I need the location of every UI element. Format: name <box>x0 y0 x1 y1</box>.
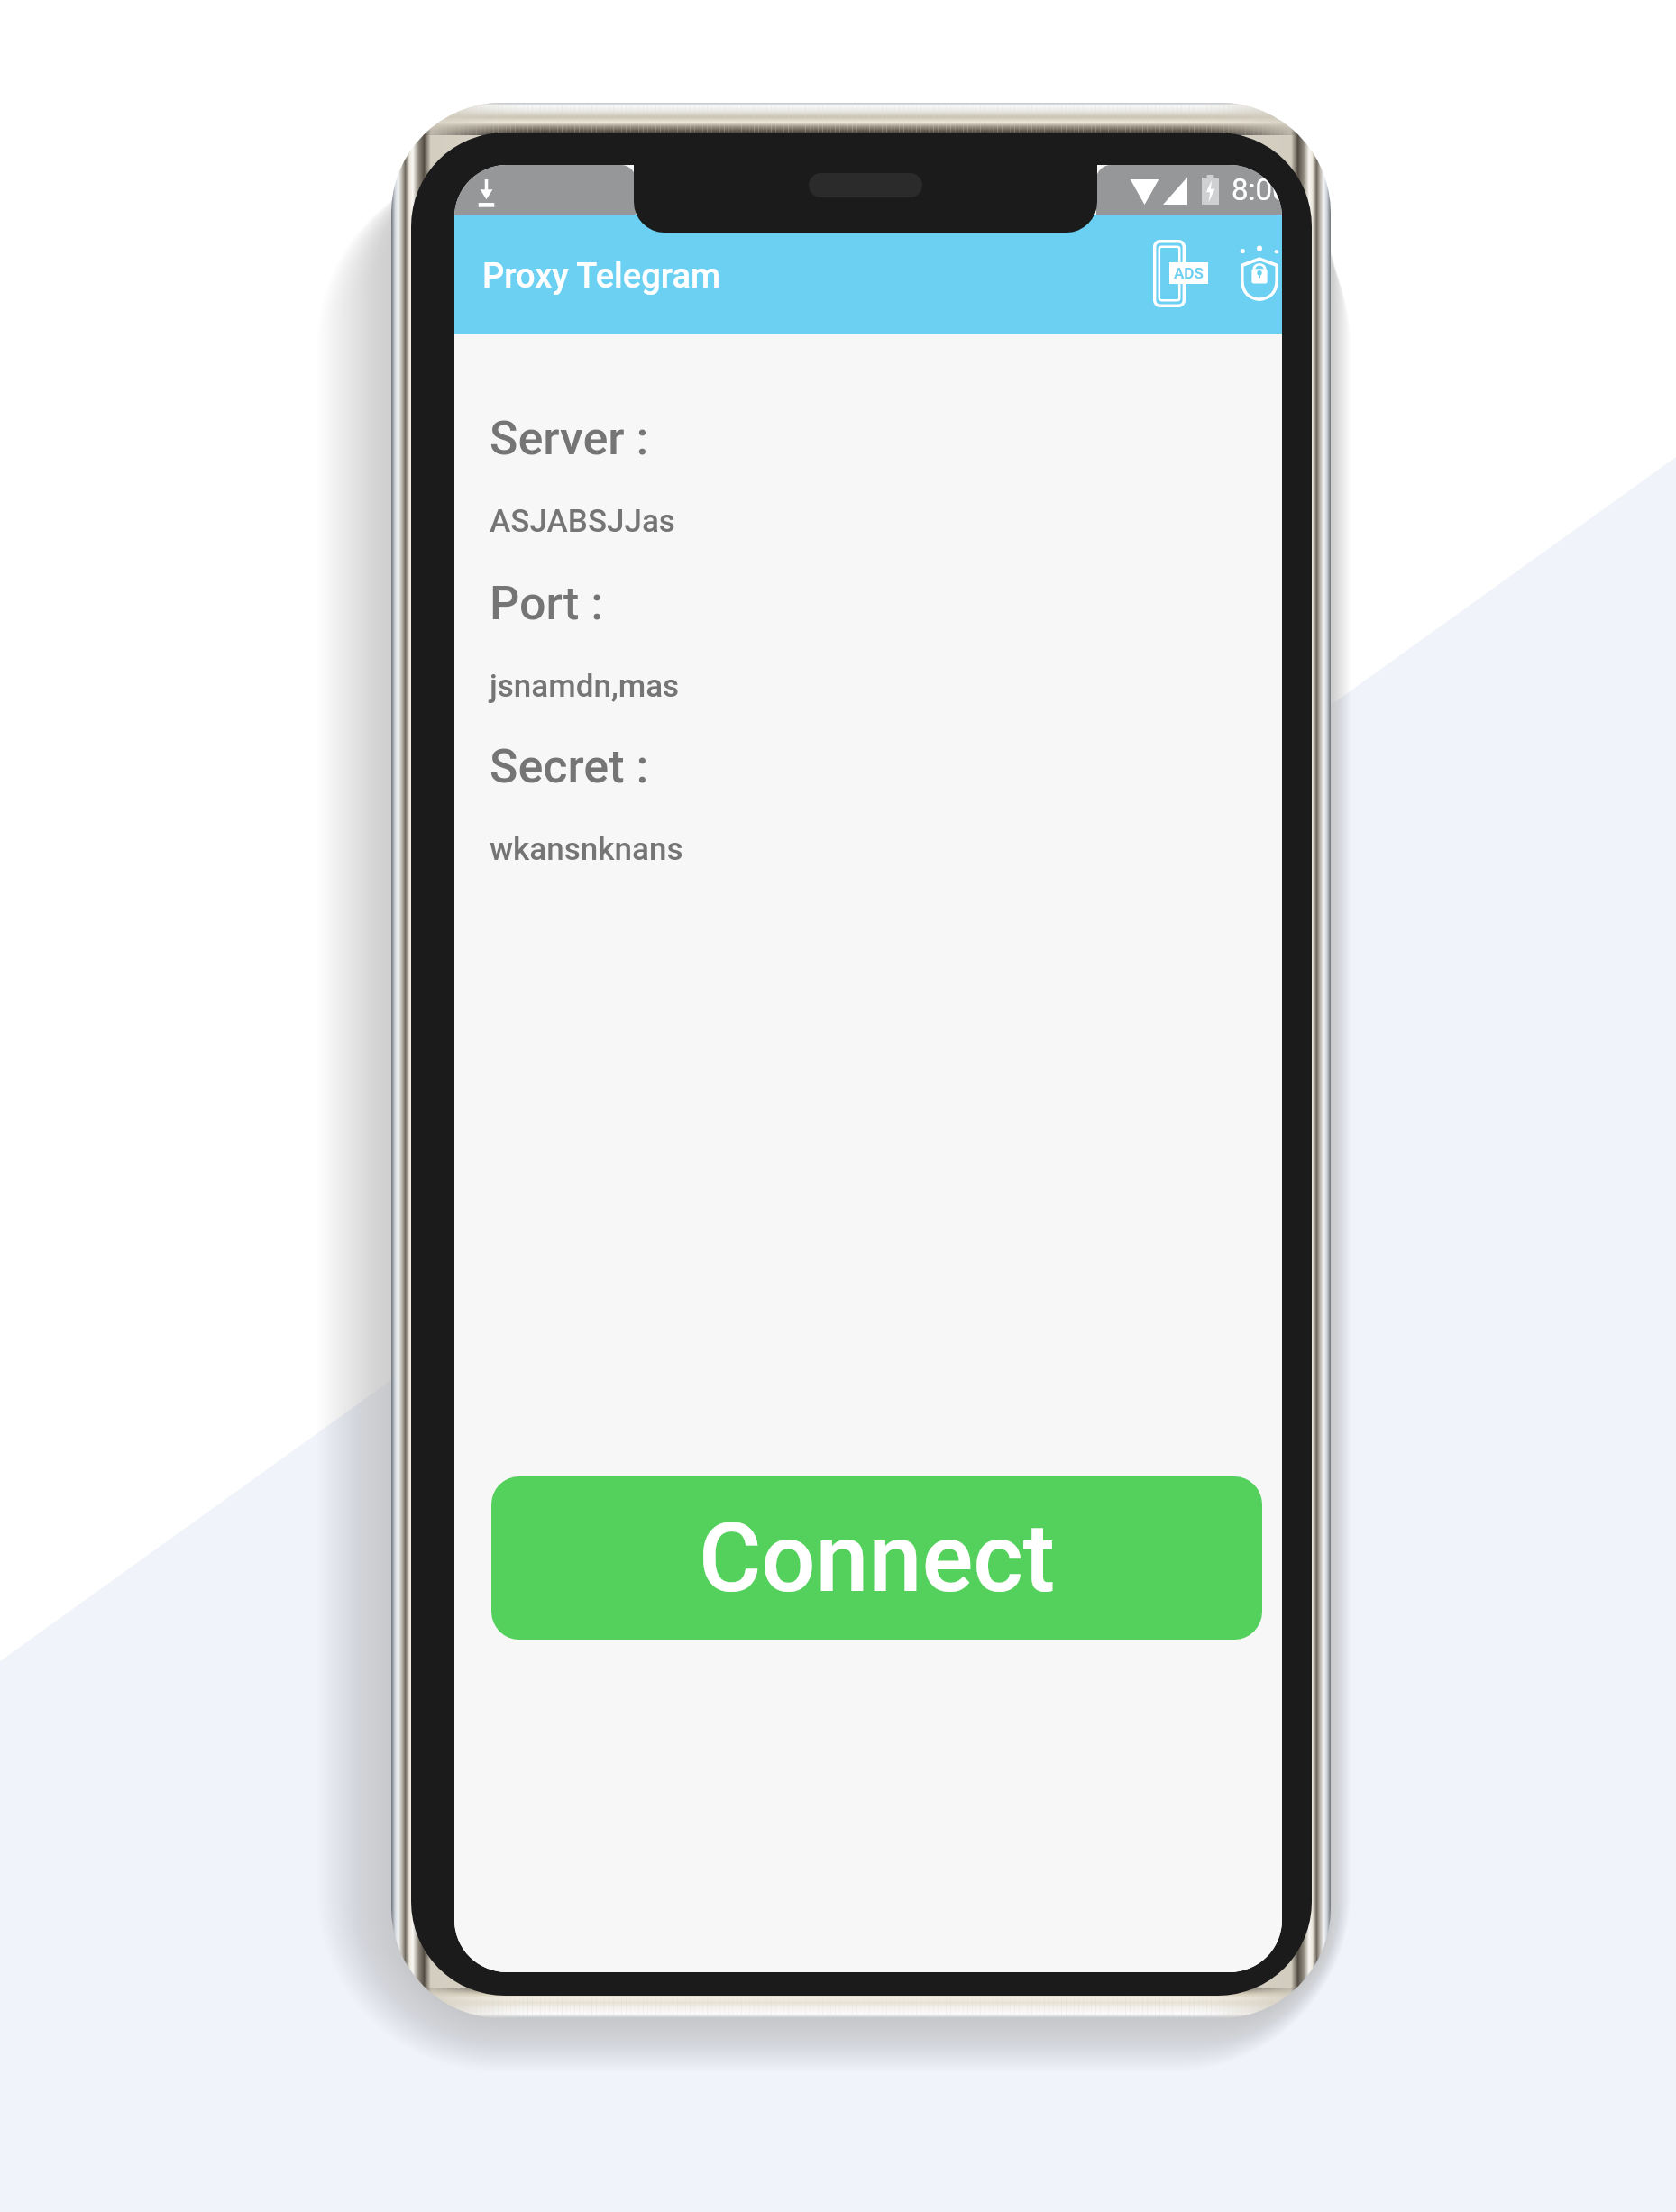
staticText: wkansnknans <box>490 831 683 868</box>
staticText: 8:00 <box>1232 172 1282 207</box>
button[interactable]: Security <box>1219 222 1282 326</box>
staticText: Secret : <box>490 739 649 794</box>
staticText: Port : <box>490 576 604 631</box>
button[interactable]: Remove ads <box>1131 222 1218 326</box>
staticText: Server : <box>490 411 649 466</box>
staticText: Proxy Telegram <box>482 256 721 297</box>
button[interactable]: Connect <box>491 1476 1262 1640</box>
staticText: jsnamdn,mas <box>490 668 680 705</box>
staticText: ADS <box>1174 264 1204 282</box>
staticText: ASJABSJJas <box>490 503 675 540</box>
staticText: Connect <box>699 1503 1056 1614</box>
